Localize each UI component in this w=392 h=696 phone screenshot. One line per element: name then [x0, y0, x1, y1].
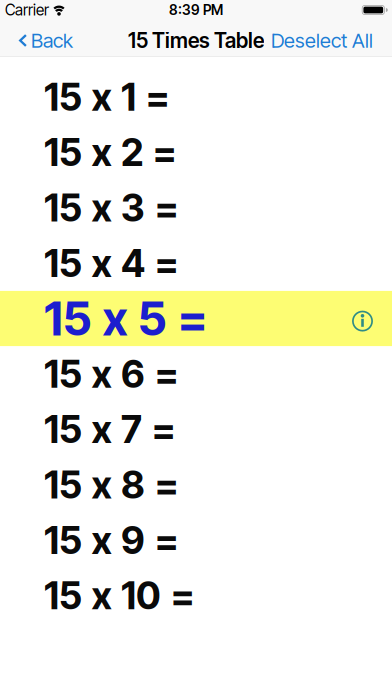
staticText: 15 — [44, 290, 92, 347]
staticText: 15 — [44, 185, 82, 231]
staticText: = — [145, 74, 169, 120]
button[interactable]: 15 — [0, 235, 392, 291]
staticText: 3 — [121, 185, 145, 231]
staticText: 15 — [44, 517, 82, 563]
staticText: х — [91, 462, 111, 508]
staticText: 15 — [44, 351, 82, 397]
button[interactable]: 15 — [0, 69, 392, 125]
button[interactable]: More Info — [352, 306, 373, 332]
button[interactable]: 15 — [0, 180, 392, 235]
staticText: х — [91, 130, 111, 175]
staticText: 9 — [121, 517, 145, 563]
staticText: 7 — [121, 407, 142, 452]
staticText: х — [91, 573, 111, 618]
button[interactable]: 15 — [0, 291, 392, 346]
button[interactable]: 15 — [0, 402, 392, 457]
staticText: 2 — [121, 130, 143, 175]
staticText: = — [154, 185, 178, 231]
staticText: Carrier — [5, 1, 49, 19]
staticText: 15 — [44, 462, 82, 508]
staticText: = — [154, 517, 178, 563]
staticText: = — [152, 130, 176, 175]
staticText: = — [170, 573, 194, 618]
staticText: х — [91, 74, 111, 120]
staticText: 15 — [44, 573, 82, 618]
staticText: = — [177, 290, 207, 347]
button[interactable]: 15 — [0, 125, 392, 180]
staticText: 8 — [121, 462, 145, 508]
staticText: Deselect All — [271, 28, 373, 53]
staticText: 6 — [121, 351, 145, 397]
staticText: = — [151, 407, 175, 452]
staticText: х — [102, 290, 127, 347]
staticText: 4 — [121, 240, 145, 286]
staticText: 15 — [44, 407, 82, 452]
button[interactable]: 15 — [0, 568, 392, 623]
staticText: х — [91, 185, 111, 231]
staticText: 1 — [121, 74, 136, 120]
staticText: 10 — [121, 573, 161, 618]
staticText: 5 — [138, 290, 167, 347]
button[interactable]: 15 — [0, 457, 392, 512]
button[interactable]: Back — [0, 28, 73, 53]
staticText: 15 — [44, 240, 82, 286]
staticText: х — [91, 407, 111, 452]
button[interactable]: Deselect All — [271, 28, 392, 53]
staticText: = — [154, 240, 178, 286]
staticText: = — [154, 462, 178, 508]
staticText: х — [91, 351, 111, 397]
button[interactable]: 15 — [0, 346, 392, 402]
staticText: 15 Times Table — [128, 28, 264, 53]
staticText: х — [91, 240, 111, 286]
button[interactable]: 15 — [0, 512, 392, 568]
staticText: Back — [31, 28, 73, 53]
staticText: х — [91, 517, 111, 563]
staticText: 8:39 PM — [169, 1, 223, 18]
staticText: = — [154, 351, 178, 397]
staticText: 15 — [44, 74, 82, 120]
staticText: 15 — [44, 130, 82, 175]
